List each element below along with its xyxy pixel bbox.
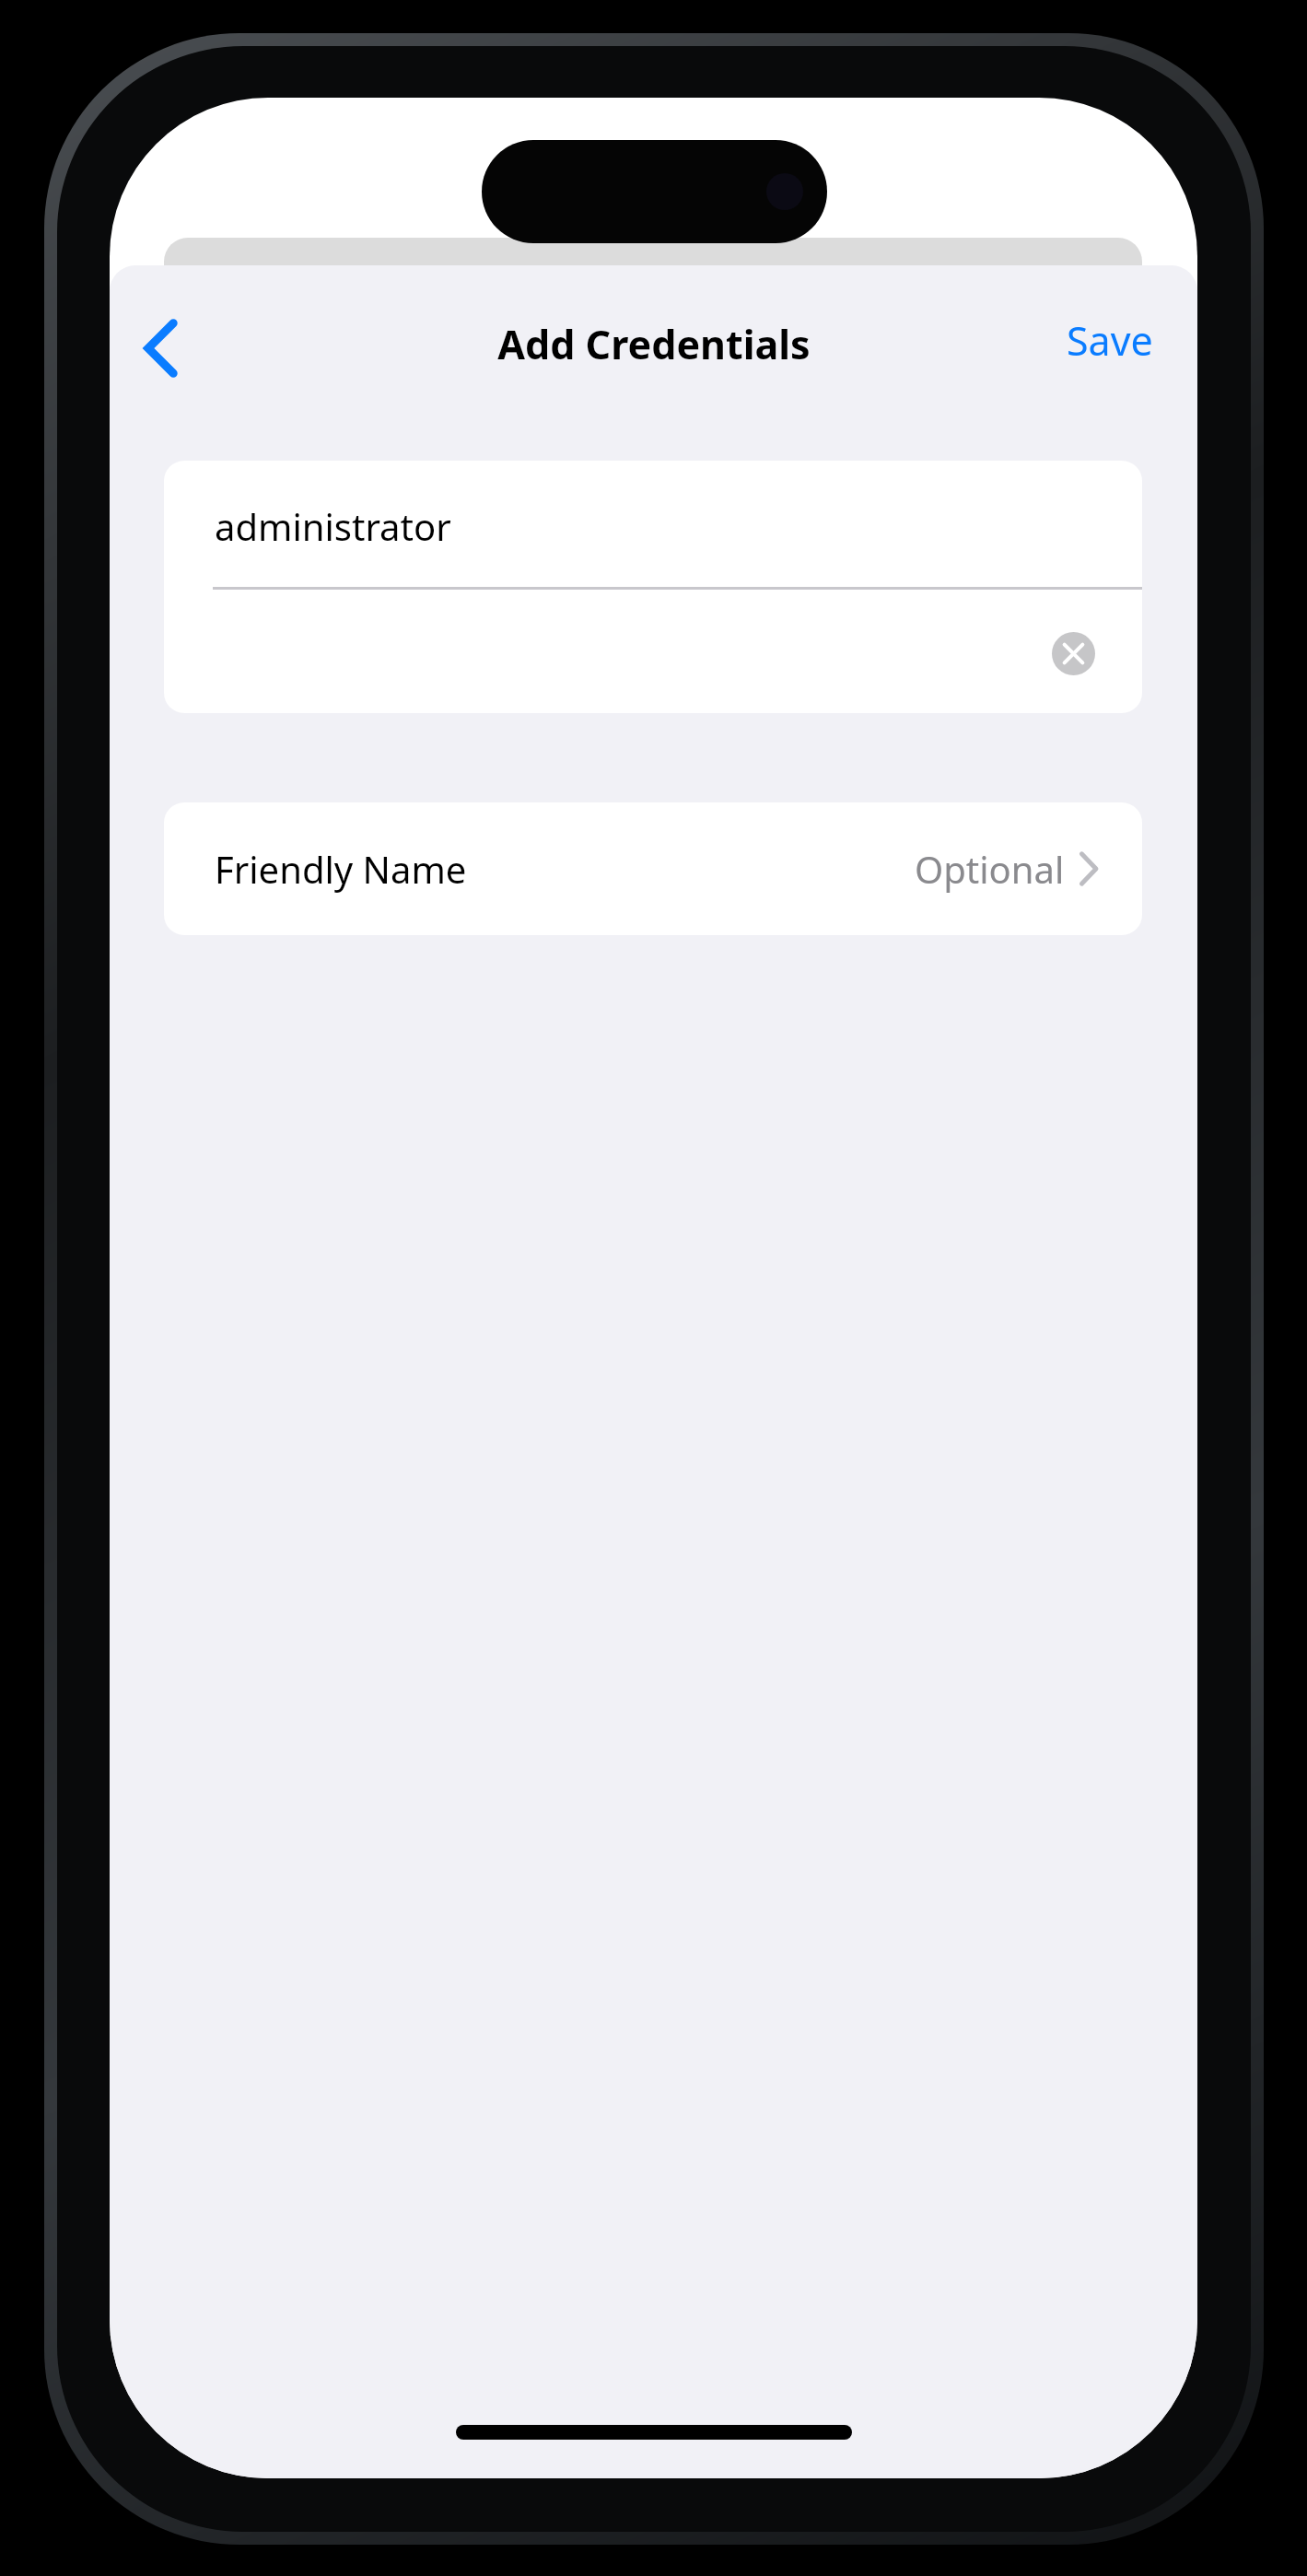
- staticText: Friendly Name: [215, 844, 467, 894]
- staticText: Add Credentials: [497, 317, 811, 371]
- button[interactable]: administrator: [164, 461, 1142, 587]
- staticText: administrator: [215, 501, 451, 551]
- button[interactable]: Friendly Name: [164, 802, 1142, 935]
- button[interactable]: Back: [117, 302, 205, 394]
- staticText: Save: [1067, 313, 1153, 368]
- staticText: Optional: [915, 844, 1065, 894]
- button[interactable]: Save: [1056, 304, 1164, 377]
- button[interactable]: Clear text: [1052, 632, 1095, 675]
- button[interactable]: Clear text: [164, 590, 1142, 713]
